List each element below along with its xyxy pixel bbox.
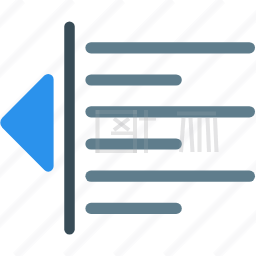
button[interactable]: Align text to the right (0, 0, 256, 256)
